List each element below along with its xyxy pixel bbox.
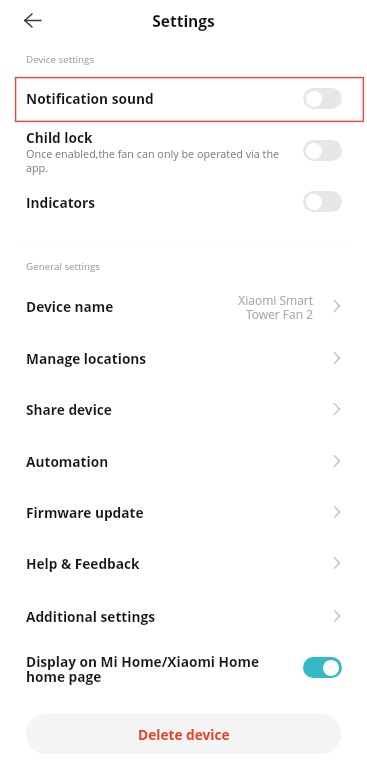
button[interactable]: Notification sound [15,77,364,122]
button[interactable]: Delete device [26,714,341,754]
staticText: General settings [26,260,101,273]
button[interactable]: Manage locations [0,334,367,378]
staticText: Device settings [26,53,95,66]
staticText: Notification sound [26,89,154,108]
staticText: Additional settings [26,607,156,626]
staticText: Display on Mi Home/Xiaomi Home home page [26,652,260,686]
button[interactable]: Switch off [303,140,342,161]
staticText: Share device [26,400,112,419]
staticText: Child lock [26,128,93,147]
button[interactable]: Back [13,1,52,40]
button[interactable]: Help & Feedback [0,539,367,583]
staticText: Indicators [26,193,96,212]
button[interactable]: Switch off [303,191,342,212]
staticText: Once enabled,the fan can only be operate… [26,146,294,175]
staticText: Manage locations [26,349,147,368]
button[interactable]: Switch on [303,657,342,678]
button[interactable]: Additional settings [0,592,367,636]
staticText: Device name [26,297,114,316]
button[interactable]: Switch off [303,88,342,109]
staticText: Settings [0,10,367,31]
button[interactable]: Firmware update [0,488,367,532]
staticText: Automation [26,452,109,471]
button[interactable]: Display on Mi Home/Xiaomi Home home page [0,642,367,692]
staticText: Xiaomi Smart Tower Fan 2 [200,292,313,322]
staticText: Firmware update [26,503,144,522]
button[interactable]: Device name [0,282,367,328]
staticText: Help & Feedback [26,554,140,573]
button[interactable]: Share device [0,385,367,429]
staticText: Delete device [138,725,230,744]
button[interactable] [0,126,367,182]
button[interactable] [0,186,367,226]
button[interactable]: Automation [0,437,367,481]
